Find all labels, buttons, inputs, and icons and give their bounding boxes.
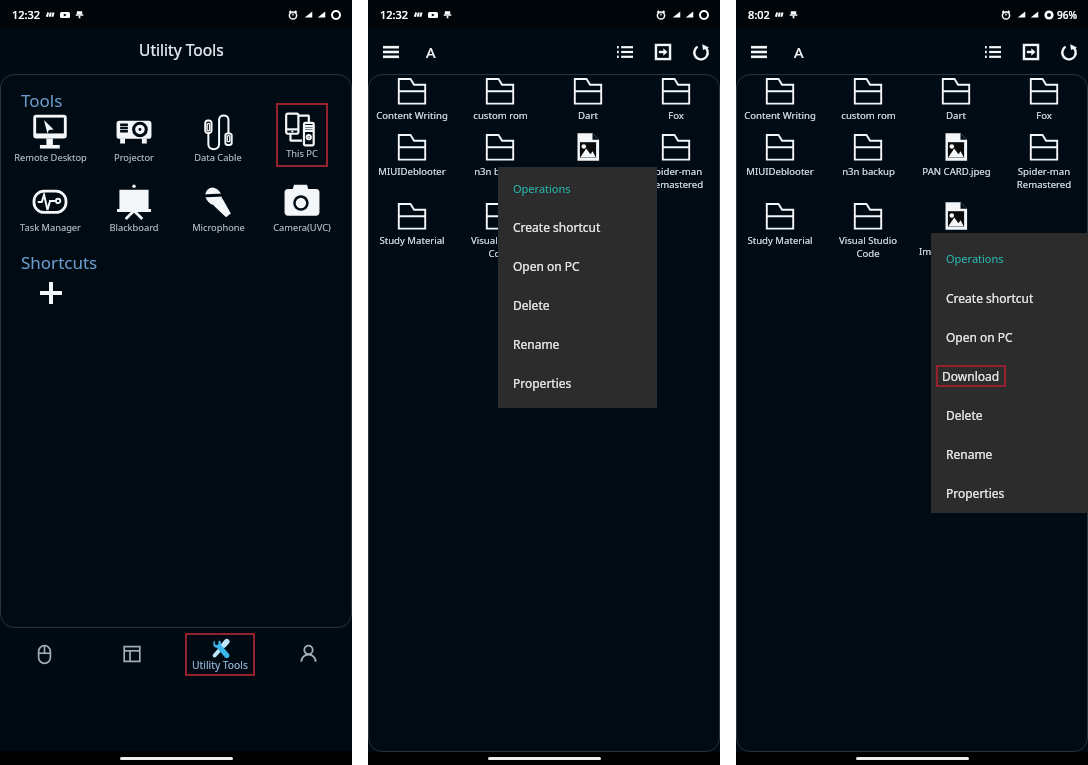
button[interactable]: Utility Tools [192,637,248,672]
button[interactable]: Spider-man Remastered [1000,132,1088,191]
button[interactable]: Fox [632,76,720,122]
button[interactable]: Visual Studio Code [456,201,544,260]
button[interactable]: Sort [785,38,813,66]
button[interactable]: Study Material [736,201,824,247]
staticText: Delete [513,297,550,313]
staticText: A [426,42,436,62]
staticText: Microphone [192,221,245,234]
staticText: Study Material [379,234,445,247]
staticText: Spider-man Remastered [1007,165,1081,191]
staticText: Visual Studio Code [831,234,905,260]
button[interactable]: Refresh [1055,38,1083,66]
staticText: Dart [578,109,598,122]
button[interactable]: Delete [498,285,657,324]
staticText: Utility Tools [139,39,224,60]
staticText: Im [919,245,932,258]
staticText: Fox [1036,109,1052,122]
button[interactable]: Transfer [649,38,677,66]
button[interactable]: Menu [377,38,405,66]
button[interactable]: Delete [931,395,1088,434]
button[interactable]: Microphone [176,184,260,234]
staticText: PAN CARD.jpeg [922,165,991,178]
staticText: Data Cable [194,151,242,164]
staticText: Create shortcut [513,219,601,235]
button[interactable]: Create shortcut [498,207,657,246]
button[interactable]: PAN CARD.jpeg [544,132,632,178]
button[interactable]: Content Writing [368,76,456,122]
button[interactable]: Data Cable [176,114,260,164]
button[interactable]: Open on PC [498,246,657,285]
staticText: Open on PC [946,329,1013,345]
button[interactable]: List view [979,38,1007,66]
button[interactable]: Menu [745,38,773,66]
button[interactable]: Visual Studio Code [824,201,912,260]
button[interactable]: Add shortcut [37,279,65,307]
button[interactable]: Transfer [1017,38,1045,66]
button[interactable]: Create shortcut [931,278,1088,317]
button[interactable]: custom rom [456,76,544,122]
button[interactable]: n3n backup [824,132,912,178]
staticText: Rename [513,336,560,352]
button[interactable]: Mouse [0,628,88,680]
button[interactable]: Image [912,201,1000,247]
button[interactable]: Rename [498,324,657,363]
staticText: Fox [668,109,684,122]
button[interactable]: List view [611,38,639,66]
staticText: 12:32 [12,7,41,22]
button[interactable]: Projector [92,114,176,164]
staticText: custom rom [473,109,528,122]
button[interactable]: This PC [284,110,320,160]
button[interactable]: MIUIDeblooter [368,132,456,178]
button[interactable]: Spider-man Remastered [632,132,720,191]
staticText: n3n backup [842,165,895,178]
button[interactable]: custom rom [824,76,912,122]
staticText: Tools [21,89,63,112]
staticText: MIUIDeblooter [378,165,446,178]
staticText: 8:02 [748,7,770,22]
button[interactable]: Layout [88,628,176,680]
button[interactable]: Study Material [368,201,456,247]
button[interactable]: Refresh [687,38,715,66]
staticText: 96% [1057,8,1077,22]
button[interactable]: Content Writing [736,76,824,122]
staticText: Utility Tools [192,658,248,672]
staticText: Delete [946,407,983,423]
staticText: Study Material [747,234,813,247]
button[interactable]: This PC [284,110,320,160]
staticText: custom rom [841,109,896,122]
staticText: n3n backup [474,165,527,178]
button[interactable]: Dart [912,76,1000,122]
staticText: Content Writing [376,109,448,122]
staticText: Task Manager [20,221,81,234]
button[interactable]: Operations [498,169,657,207]
button[interactable]: Open on PC [931,317,1088,356]
button[interactable]: Sort [417,38,445,66]
button[interactable]: Profile [264,628,352,680]
button[interactable]: MIUIDeblooter [736,132,824,178]
staticText: Blackboard [109,221,159,234]
button[interactable]: Properties [498,363,657,402]
button[interactable]: Download [931,356,1088,395]
staticText: Open on PC [513,258,580,274]
button[interactable]: Dart [544,76,632,122]
button[interactable]: Task Manager [8,184,92,234]
staticText: 12:32 [380,7,409,22]
button[interactable]: Camera(UVC) [260,184,344,234]
staticText: Remote Desktop [14,151,87,164]
staticText: This PC [286,147,318,160]
button[interactable]: PAN CARD.jpeg [912,132,1000,178]
staticText: Operations [946,251,1004,266]
button[interactable]: n3n backup [456,132,544,178]
button[interactable]: Image [544,201,632,247]
button[interactable]: Operations [931,239,1088,278]
staticText: Properties [946,485,1005,501]
staticText: Operations [513,181,571,196]
button[interactable]: Remote Desktop [8,114,92,164]
button[interactable]: Blackboard [92,184,176,234]
staticText: PAN CARD.jpeg [554,165,623,178]
button[interactable]: Properties [931,473,1088,512]
button[interactable]: Fox [1000,76,1088,122]
button[interactable]: Rename [931,434,1088,473]
